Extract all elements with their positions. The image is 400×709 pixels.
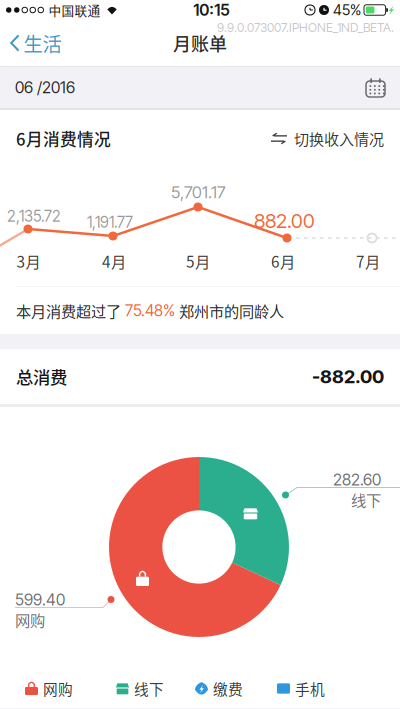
staticText: 06 /2016 [15, 78, 75, 97]
staticText: 手机 [295, 678, 325, 699]
staticText: 75.48% [121, 301, 179, 320]
staticText: 45% [333, 1, 361, 19]
staticText: 总消费 [16, 364, 67, 389]
staticText: -882.00 [312, 365, 384, 388]
staticText: 缴费 [213, 678, 243, 699]
button[interactable]: 06 /2016 [0, 67, 400, 108]
staticText: 882.00 [254, 209, 315, 233]
button[interactable]: 手机 [277, 670, 325, 707]
staticText: 10:15 [193, 0, 230, 20]
staticText: 切换收入情况 [294, 128, 384, 149]
staticText: 9.9.0.073007.IPHONE_1ND_BETA. [217, 20, 394, 35]
button[interactable]: 切换收入情况 [271, 128, 384, 149]
staticText: 中国联通 [48, 1, 100, 19]
staticText: 线下 [351, 488, 381, 511]
button[interactable]: 线下 [116, 670, 164, 707]
staticText: 1,191.77 [87, 213, 133, 231]
button[interactable]: 网购 [25, 670, 73, 707]
staticText: 282.60 [333, 470, 381, 489]
staticText: 599.40 [15, 590, 65, 609]
staticText: 线下 [134, 678, 164, 699]
staticText: 5月 [186, 250, 210, 272]
staticText: 网购 [43, 678, 73, 699]
button[interactable]: 缴费 [195, 670, 243, 707]
staticText: 本月消费超过了 [16, 299, 121, 321]
staticText: 3月 [16, 250, 40, 272]
staticText: 6月 [271, 250, 295, 272]
staticText: 网购 [15, 608, 45, 631]
staticText: 2,135.72 [7, 207, 61, 225]
staticText: 郑州市的同龄人 [179, 299, 284, 321]
staticText: 7月 [356, 250, 380, 272]
staticText: 5,701.17 [171, 182, 226, 202]
button[interactable]: 生活 [0, 19, 61, 67]
staticText: 6月消费情况 [16, 126, 111, 150]
staticText: 月账单 [173, 30, 227, 56]
staticText: 4月 [102, 250, 126, 272]
staticText: 生活 [23, 29, 61, 57]
